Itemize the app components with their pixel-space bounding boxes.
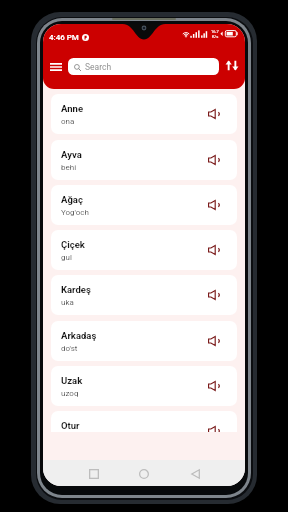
button[interactable]: Kardeş xyxy=(51,275,237,315)
button[interactable]: Search xyxy=(68,58,219,75)
button[interactable]: Anne xyxy=(51,94,237,134)
button[interactable]: Ayva xyxy=(51,140,237,180)
button[interactable]: Recent apps xyxy=(82,462,106,486)
staticText: Kardeş xyxy=(61,284,91,295)
staticText: Ayva xyxy=(61,149,82,160)
staticText: gul xyxy=(61,253,72,262)
staticText: Uzak xyxy=(61,375,83,386)
staticText: uzoq xyxy=(61,389,79,398)
button[interactable]: Play pronunciation xyxy=(204,105,222,123)
staticText: Arkadaş xyxy=(61,330,97,341)
staticText: Ağaç xyxy=(61,194,83,205)
button[interactable]: Back xyxy=(183,462,207,486)
staticText: do'st xyxy=(61,344,78,353)
button[interactable]: Otur xyxy=(51,411,237,432)
button[interactable]: Play pronunciation xyxy=(204,286,222,304)
staticText: Anne xyxy=(61,103,84,114)
button[interactable]: Play pronunciation xyxy=(204,196,222,214)
staticText: ona xyxy=(61,117,75,126)
button[interactable]: Ağaç xyxy=(51,185,237,225)
staticText: behi xyxy=(61,163,77,172)
staticText: Yog'och xyxy=(61,208,89,217)
staticText: Çiçek xyxy=(61,239,85,250)
button[interactable]: Arkadaş xyxy=(51,321,237,361)
staticText: uka xyxy=(61,298,74,307)
button[interactable]: Çiçek xyxy=(51,230,237,270)
button[interactable]: Play pronunciation xyxy=(204,422,222,432)
staticText: 4:46 PM xyxy=(49,33,79,42)
staticText: K/s xyxy=(212,34,219,39)
button[interactable]: Home xyxy=(132,462,156,486)
button[interactable]: Uzak xyxy=(51,366,237,406)
button[interactable]: Play pronunciation xyxy=(204,332,222,350)
button[interactable]: Play pronunciation xyxy=(204,151,222,169)
button[interactable]: Menu xyxy=(46,57,65,76)
staticText: 16.7 xyxy=(211,29,219,34)
button[interactable]: Play pronunciation xyxy=(204,241,222,259)
staticText: Search xyxy=(85,62,112,72)
button[interactable]: Sort xyxy=(222,56,242,75)
button[interactable]: Play pronunciation xyxy=(204,377,222,395)
staticText: Otur xyxy=(61,420,80,431)
